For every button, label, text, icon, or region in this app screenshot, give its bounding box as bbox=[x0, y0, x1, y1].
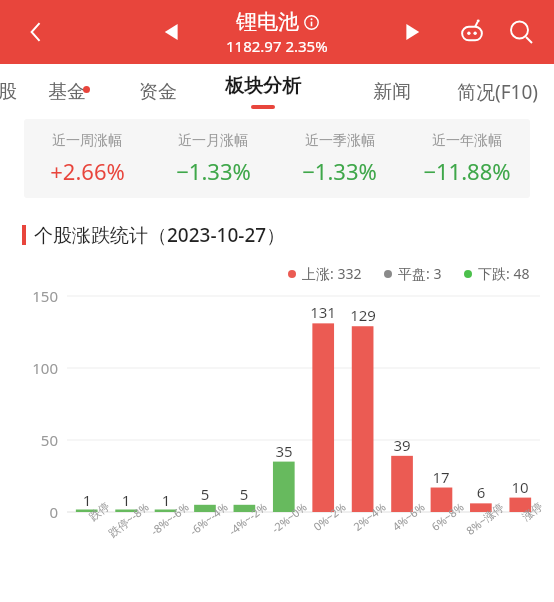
staticText: -6%~-4% bbox=[161, 499, 230, 558]
staticText: −1.33% bbox=[302, 156, 377, 186]
staticText: 下跌: 48 bbox=[478, 264, 530, 283]
staticText: 6%~8% bbox=[397, 499, 466, 558]
staticText: -2%~0% bbox=[240, 499, 309, 558]
staticText: 涨停 bbox=[477, 499, 545, 557]
staticText: 近一季涨幅 bbox=[305, 132, 375, 150]
button[interactable]: Next bbox=[392, 12, 432, 52]
staticText: 简况(F10) bbox=[457, 79, 538, 105]
staticText: -4%~-2% bbox=[200, 499, 269, 558]
staticText: 资金 bbox=[139, 80, 177, 104]
button[interactable]: Previous bbox=[152, 12, 192, 52]
staticText: 新闻 bbox=[373, 80, 411, 104]
staticText: 8%~涨停 bbox=[437, 499, 506, 558]
button[interactable]: Search bbox=[500, 11, 542, 53]
button[interactable]: 基金 bbox=[42, 70, 92, 114]
staticText: 近一年涨幅 bbox=[432, 132, 502, 150]
button[interactable]: AI assistant bbox=[452, 12, 492, 52]
button[interactable]: 上涨: 332 bbox=[288, 264, 362, 283]
button[interactable]: 近一周涨幅 bbox=[24, 119, 530, 198]
button[interactable]: 简况(F10) bbox=[451, 69, 544, 115]
staticText: 5 bbox=[183, 484, 227, 504]
staticText: 板块分析 bbox=[225, 74, 301, 98]
staticText: −1.33% bbox=[176, 156, 251, 186]
staticText: 100 bbox=[16, 358, 58, 378]
staticText: 上涨: 332 bbox=[302, 264, 362, 283]
staticText: 1 bbox=[144, 490, 188, 510]
button[interactable]: 平盘: 3 bbox=[384, 264, 442, 283]
button[interactable]: 板块分析 bbox=[225, 74, 301, 109]
staticText: 个股涨跌统计（2023-10-27） bbox=[34, 222, 286, 248]
staticText: 50 bbox=[16, 430, 58, 450]
staticText: 2%~4% bbox=[319, 499, 388, 558]
staticText: 4%~6% bbox=[358, 499, 427, 558]
staticText: 35 bbox=[262, 441, 306, 461]
staticText: 0 bbox=[16, 502, 58, 522]
staticText: 39 bbox=[380, 435, 424, 455]
staticText: 0%~2% bbox=[279, 499, 348, 558]
button[interactable]: 资金 bbox=[133, 70, 183, 114]
staticText: 锂电池 bbox=[236, 9, 299, 35]
staticText: 基金 bbox=[48, 80, 86, 104]
staticText: 近一月涨幅 bbox=[178, 132, 248, 150]
button[interactable]: 锂电池 bbox=[226, 9, 328, 56]
staticText: 跌停~-8% bbox=[82, 499, 151, 558]
button[interactable]: 下跌: 48 bbox=[464, 264, 530, 283]
staticText: 5 bbox=[222, 484, 266, 504]
staticText: 1 bbox=[104, 490, 148, 510]
staticText: -8%~-6% bbox=[122, 499, 191, 558]
staticText: 6 bbox=[459, 482, 503, 502]
button[interactable]: 新闻 bbox=[367, 70, 417, 114]
staticText: 17 bbox=[419, 467, 463, 487]
staticText: 股 bbox=[0, 80, 17, 104]
staticText: 平盘: 3 bbox=[398, 264, 442, 283]
staticText: 129 bbox=[341, 305, 385, 325]
staticText: +2.66% bbox=[50, 156, 125, 186]
button[interactable]: Back bbox=[16, 12, 56, 52]
staticText: 1182.97 2.35% bbox=[226, 36, 328, 56]
button[interactable]: 股 bbox=[0, 70, 27, 114]
staticText: −11.88% bbox=[423, 156, 511, 186]
staticText: 131 bbox=[301, 302, 345, 322]
staticText: 近一周涨幅 bbox=[52, 132, 122, 150]
staticText: 1 bbox=[65, 490, 109, 510]
staticText: 跌停 bbox=[44, 499, 112, 557]
staticText: 150 bbox=[16, 286, 58, 306]
staticText: 10 bbox=[498, 477, 542, 497]
